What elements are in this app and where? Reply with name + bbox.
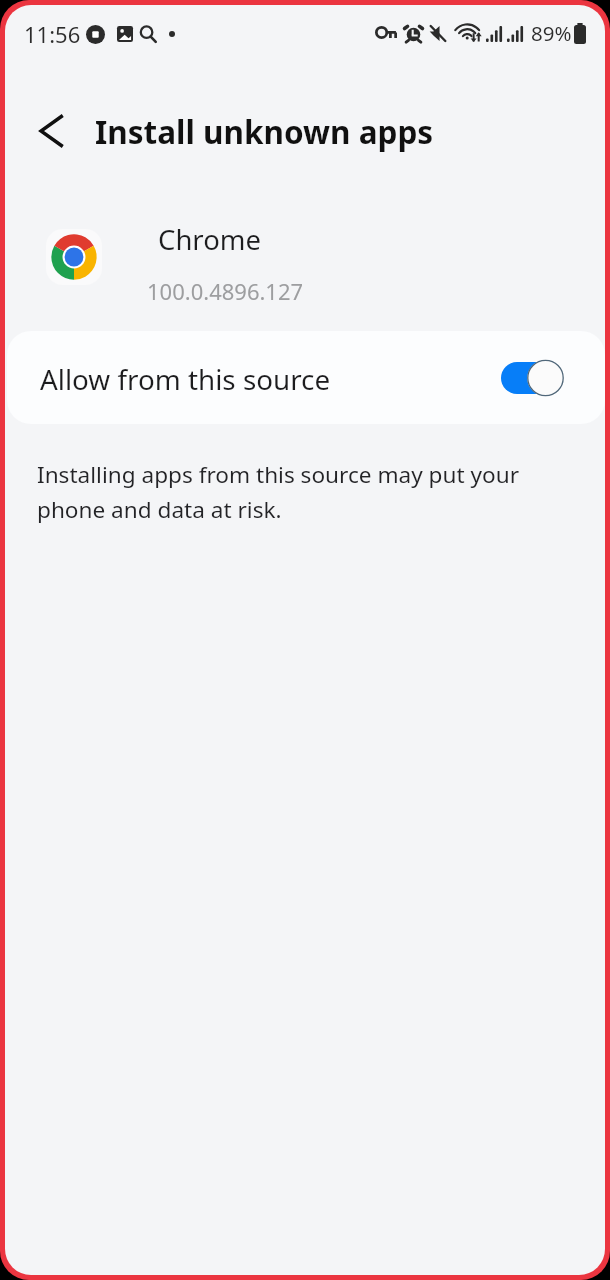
staticText: Allow from this source [40,360,331,398]
button[interactable]: Allow from this source [7,331,605,424]
button[interactable]: Allow from this source [501,358,565,398]
staticText: 100.0.4896.127 [147,276,304,306]
button[interactable]: Navigate up [27,107,75,155]
staticText: 89% [531,19,572,47]
staticText: Chrome [158,221,262,258]
staticText: 11:56 [24,19,81,49]
staticText: Install unknown apps [95,110,434,153]
staticText: Installing apps from this source may put… [37,459,542,525]
